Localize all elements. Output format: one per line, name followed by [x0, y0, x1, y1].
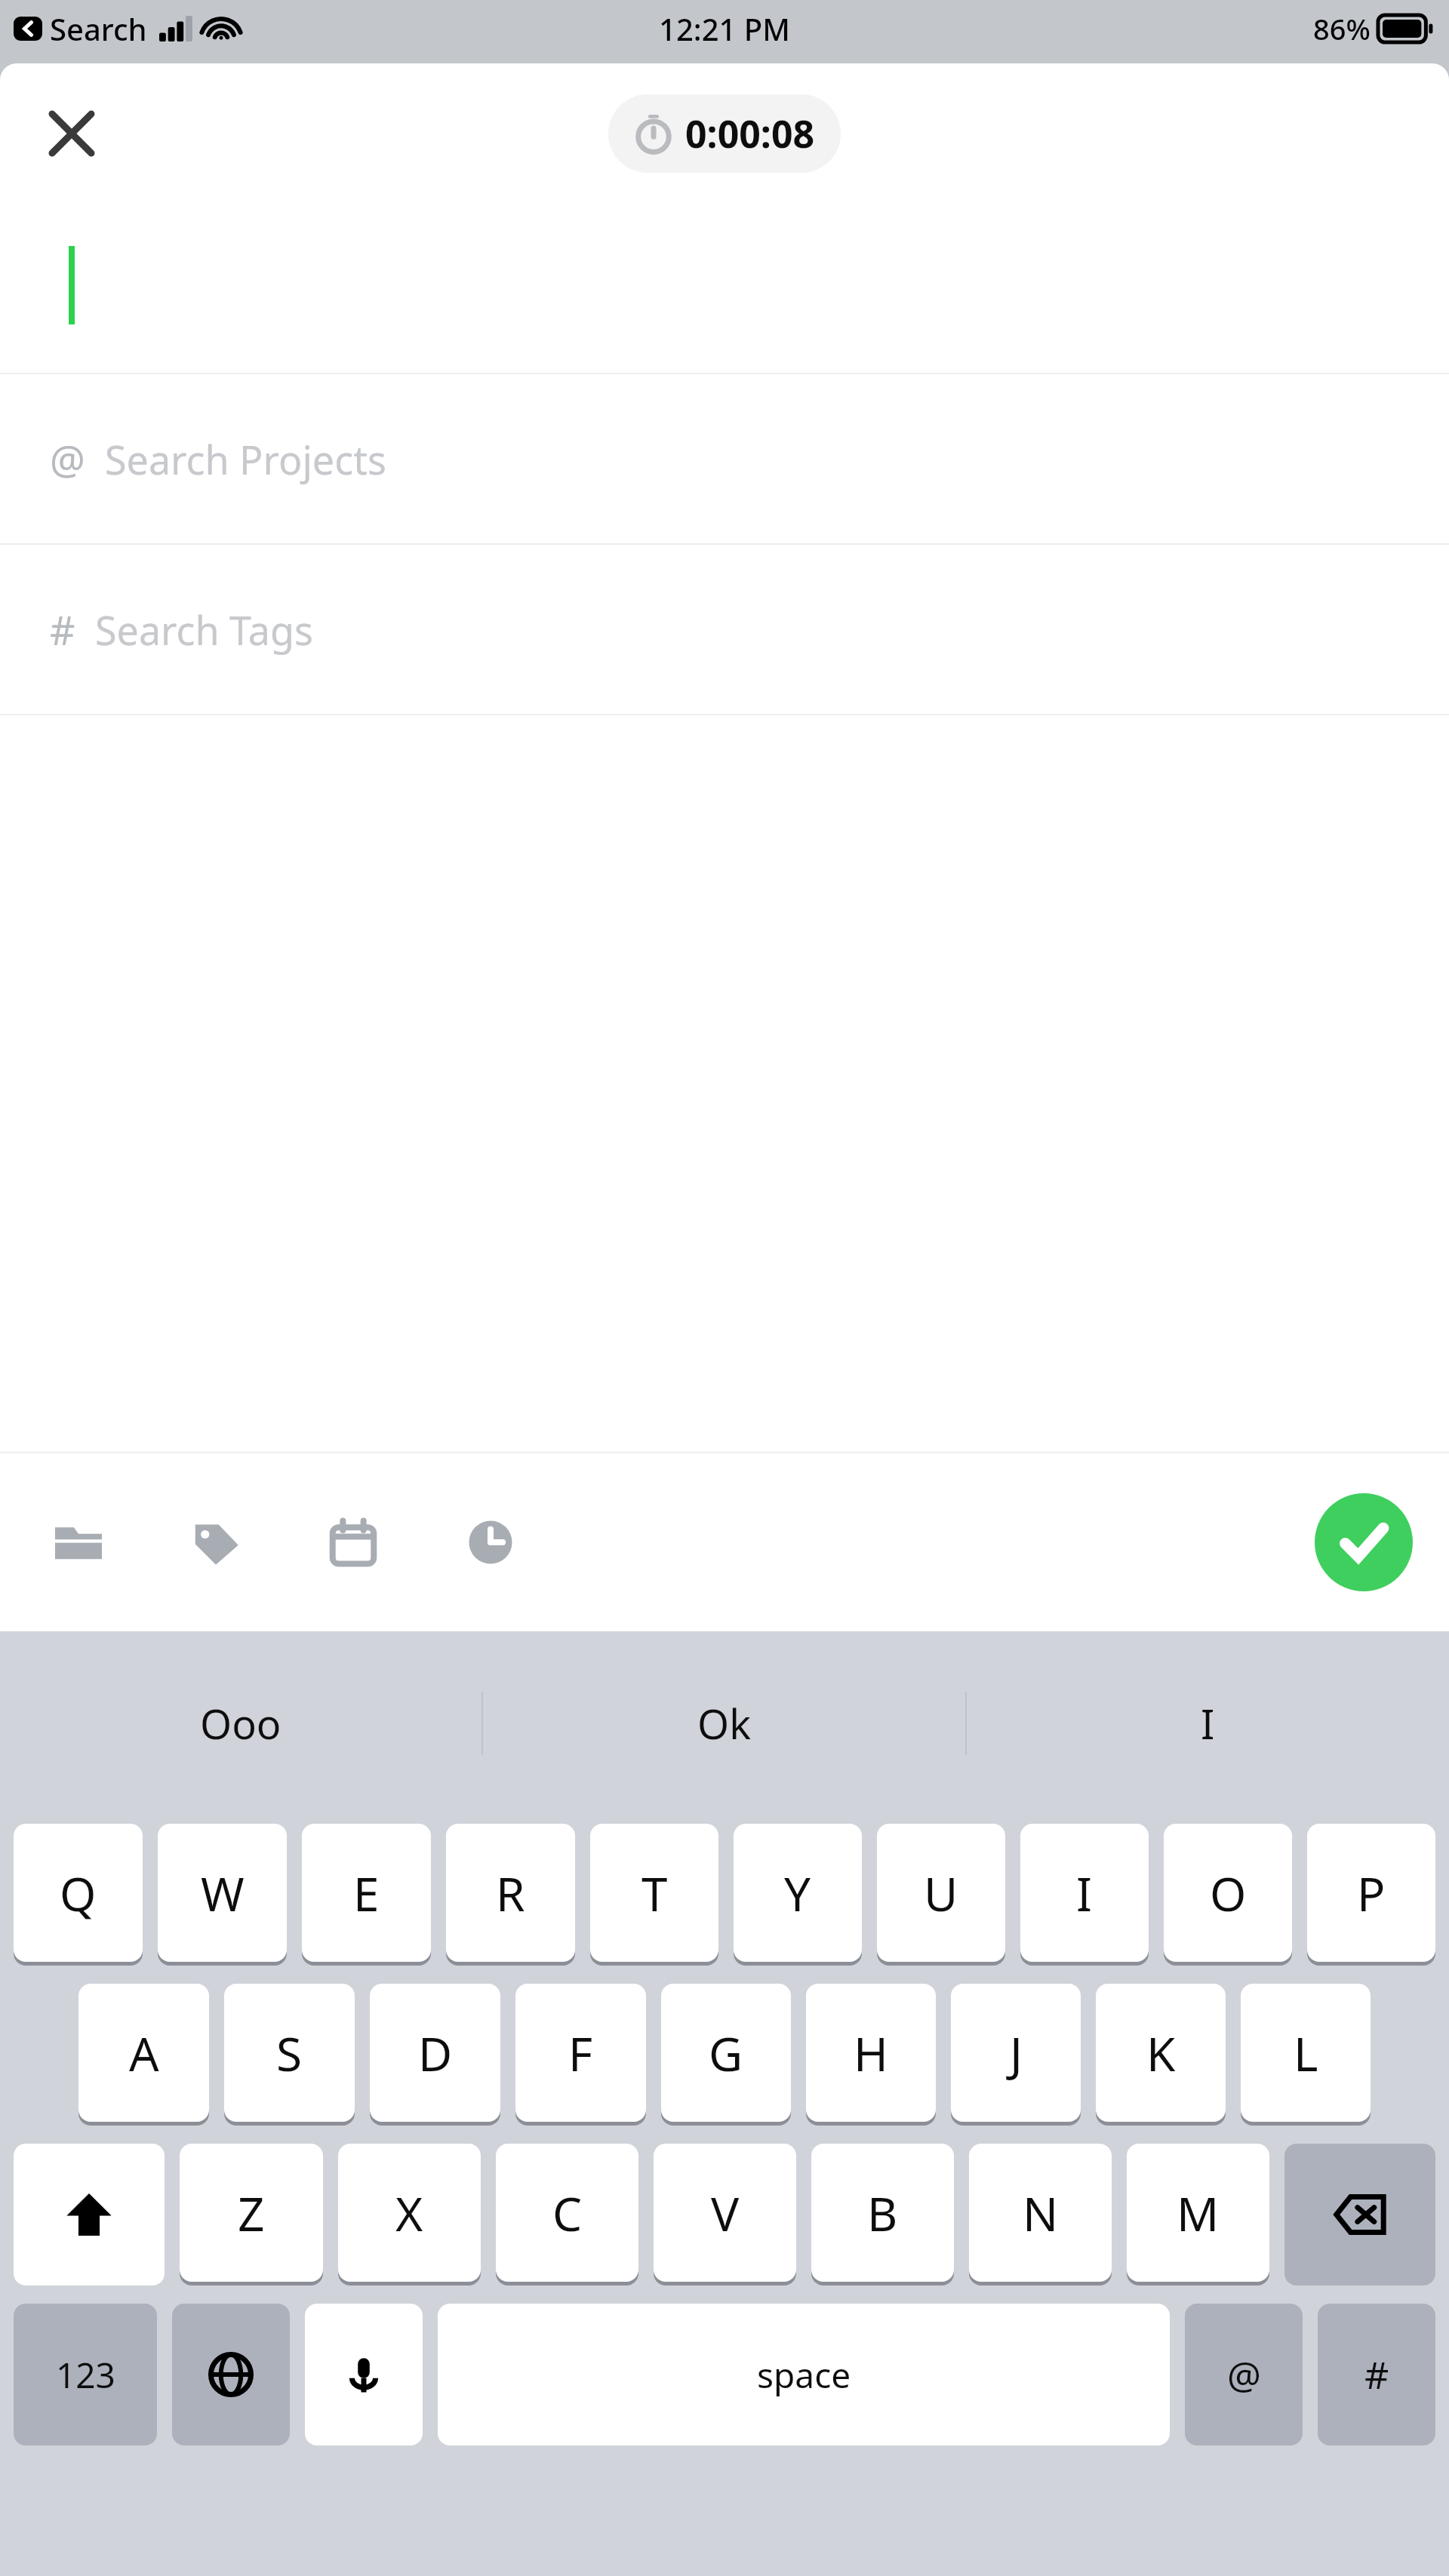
staticText: D [418, 2021, 453, 2085]
staticText: O [1210, 1861, 1247, 1925]
staticText: 0:00:08 [685, 108, 815, 159]
staticText: N [1023, 2181, 1059, 2245]
button[interactable]: Tags [177, 1503, 255, 1582]
button[interactable]: Ooo [0, 1631, 481, 1815]
staticText: Y [784, 1861, 811, 1925]
staticText: S [276, 2021, 303, 2085]
button[interactable]: P [1307, 1824, 1435, 1962]
button[interactable]: Close [30, 92, 113, 175]
button[interactable]: K [1096, 1984, 1226, 2122]
button[interactable]: R [446, 1824, 575, 1962]
button[interactable]: N [969, 2144, 1112, 2282]
button[interactable]: T [590, 1824, 718, 1962]
button[interactable]: Dictation [305, 2304, 423, 2445]
button[interactable]: O [1164, 1824, 1292, 1962]
button[interactable]: Switch language [172, 2304, 290, 2445]
button[interactable]: # [0, 545, 1449, 714]
staticText: 86% [1313, 9, 1371, 48]
button[interactable]: F [515, 1984, 646, 2122]
staticText: A [129, 2021, 159, 2085]
button[interactable]: 0:00:08 [608, 94, 841, 173]
staticText: E [353, 1861, 380, 1925]
button[interactable]: space [438, 2304, 1170, 2445]
staticText: Search Projects [105, 432, 386, 486]
staticText: W [201, 1861, 245, 1925]
staticText: T [641, 1861, 668, 1925]
button[interactable]: J [951, 1984, 1081, 2122]
button[interactable]: L [1241, 1984, 1371, 2122]
button[interactable]: Z [180, 2144, 323, 2282]
staticText: V [711, 2181, 740, 2245]
button[interactable]: X [338, 2144, 481, 2282]
button[interactable]: Duration [451, 1503, 530, 1582]
staticText: Ooo [200, 1695, 281, 1751]
button[interactable]: M [1127, 2144, 1269, 2282]
button[interactable]: D [370, 1984, 500, 2122]
button[interactable]: # [1318, 2304, 1435, 2445]
staticText: M [1177, 2181, 1220, 2245]
staticText: Q [60, 1861, 97, 1925]
staticText: U [924, 1861, 958, 1925]
staticText: I [1076, 1861, 1093, 1925]
button[interactable]: @ [0, 374, 1449, 543]
button[interactable]: Ok [483, 1631, 965, 1815]
staticText: 12:21 PM [659, 8, 790, 49]
staticText: J [1010, 2021, 1023, 2085]
staticText: G [709, 2021, 743, 2085]
button[interactable]: C [496, 2144, 638, 2282]
staticText: Search [50, 8, 147, 49]
button[interactable]: @ [1185, 2304, 1303, 2445]
staticText: @ [1227, 2349, 1261, 2400]
button[interactable]: I [967, 1631, 1449, 1815]
staticText: X [395, 2181, 423, 2245]
button[interactable]: W [158, 1824, 287, 1962]
staticText: I [1201, 1695, 1215, 1751]
button[interactable]: Date [314, 1503, 392, 1582]
staticText: Z [238, 2181, 265, 2245]
staticText: # [50, 603, 75, 656]
button[interactable]: H [806, 1984, 936, 2122]
button[interactable]: V [654, 2144, 796, 2282]
button[interactable]: Backspace [1284, 2144, 1435, 2286]
staticText: 123 [56, 2351, 115, 2399]
button[interactable]: G [661, 1984, 791, 2122]
button[interactable]: A [78, 1984, 209, 2122]
button[interactable]: Save entry [1315, 1493, 1413, 1591]
staticText: R [496, 1861, 525, 1925]
staticText: Search Tags [95, 603, 313, 656]
staticText: @ [50, 432, 85, 486]
staticText: space [757, 2351, 851, 2399]
button[interactable]: E [302, 1824, 431, 1962]
button[interactable]: S [224, 1984, 355, 2122]
staticText: # [1364, 2349, 1389, 2400]
button[interactable]: Shift [14, 2144, 165, 2286]
staticText: Ok [697, 1695, 752, 1751]
staticText: F [568, 2021, 593, 2085]
staticText: L [1294, 2021, 1318, 2085]
button[interactable]: Y [734, 1824, 862, 1962]
button[interactable]: Q [14, 1824, 143, 1962]
staticText: B [867, 2181, 898, 2245]
button[interactable]: 123 [14, 2304, 157, 2445]
staticText: P [1357, 1861, 1386, 1925]
staticText: H [854, 2021, 888, 2085]
button[interactable]: Project folder [39, 1503, 118, 1582]
staticText: C [552, 2181, 583, 2245]
staticText: K [1146, 2021, 1176, 2085]
button[interactable]: I [1020, 1824, 1149, 1962]
button[interactable]: U [877, 1824, 1005, 1962]
button[interactable]: B [811, 2144, 954, 2282]
